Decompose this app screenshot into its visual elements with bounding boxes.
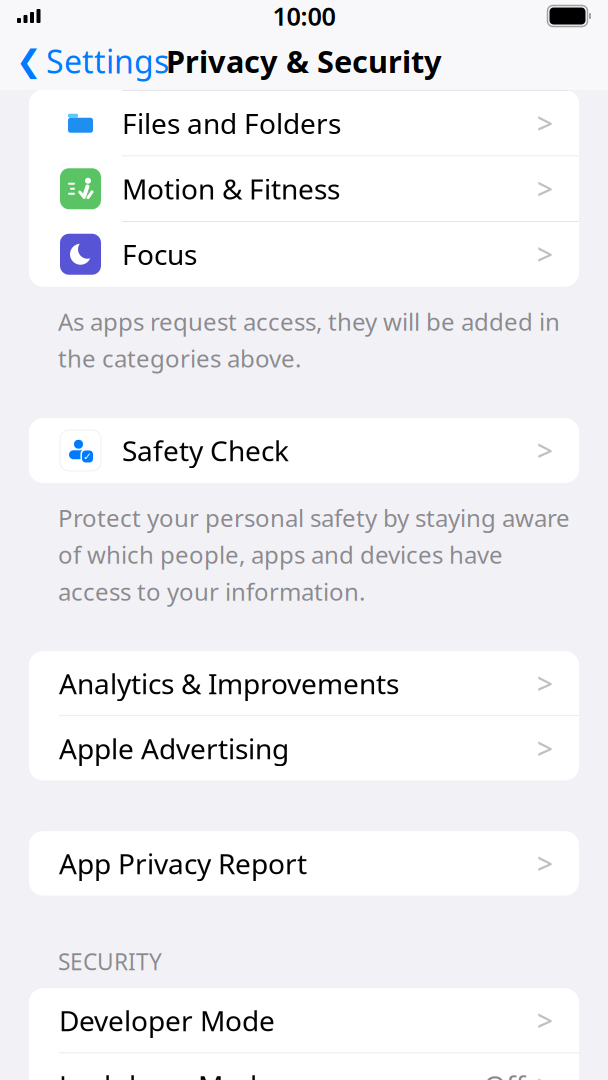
staticText: 10:00 xyxy=(272,0,335,33)
staticText: Lockdown Mode xyxy=(59,1067,273,1080)
staticText: Analytics & Improvements xyxy=(59,665,399,702)
staticText: > xyxy=(537,170,553,207)
staticText: > xyxy=(537,1067,553,1080)
staticText: Developer Mode xyxy=(59,1002,275,1039)
staticText: > xyxy=(537,730,553,767)
staticText: App Privacy Report xyxy=(59,845,307,882)
staticText: > xyxy=(537,665,553,702)
button[interactable]: Files and Folders xyxy=(29,91,579,155)
staticText: Off xyxy=(484,1067,525,1080)
staticText: Focus xyxy=(122,236,197,273)
staticText: > xyxy=(537,845,553,882)
button[interactable]: Focus xyxy=(29,222,579,286)
staticText: Motion & Fitness xyxy=(122,170,340,207)
button[interactable]: App Privacy Report xyxy=(29,831,579,895)
staticText: Safety Check xyxy=(122,432,289,469)
staticText: As apps request access, they will be add… xyxy=(58,305,560,374)
button[interactable]: ❮ xyxy=(0,32,169,90)
button[interactable]: Analytics & Improvements xyxy=(29,651,579,715)
staticText: Privacy & Security xyxy=(166,41,442,81)
button[interactable]: Lockdown Mode xyxy=(29,1053,579,1080)
button[interactable]: Apple Advertising xyxy=(29,716,579,780)
staticText: Protect your personal safety by staying … xyxy=(58,502,570,607)
staticText: Apple Advertising xyxy=(59,730,289,767)
staticText: > xyxy=(537,105,553,142)
staticText: Settings xyxy=(46,40,169,82)
staticText: SECURITY xyxy=(58,946,162,976)
staticText: > xyxy=(537,1002,553,1039)
staticText: ❮ xyxy=(16,44,42,78)
staticText: > xyxy=(537,236,553,273)
button[interactable]: Developer Mode xyxy=(29,988,579,1052)
staticText: ✓ xyxy=(83,450,92,462)
staticText: Files and Folders xyxy=(122,105,341,142)
button[interactable]: Motion & Fitness xyxy=(29,156,579,221)
staticText: > xyxy=(537,432,553,469)
button[interactable]: ✓ xyxy=(29,418,579,483)
